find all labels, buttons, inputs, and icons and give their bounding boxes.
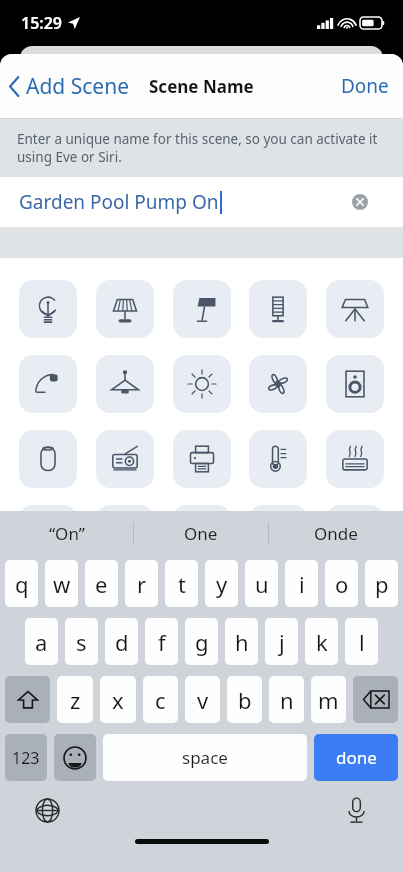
button[interactable]: Scene icon 17 [96, 505, 154, 563]
button[interactable]: t [165, 560, 198, 607]
button[interactable]: Scene icon 19 [249, 505, 307, 563]
staticText: z [70, 685, 81, 715]
button[interactable]: s [65, 618, 98, 665]
button[interactable]: x [100, 676, 136, 723]
staticText: Garden Pool Pump On [19, 189, 219, 215]
staticText: One [184, 522, 218, 545]
button[interactable]: n [269, 676, 304, 723]
staticText: e [95, 569, 108, 599]
button[interactable]: a [25, 618, 58, 665]
staticText: f [158, 627, 166, 657]
button[interactable]: p [365, 560, 398, 607]
button[interactable]: Scene icon 3 [173, 280, 231, 338]
button[interactable]: Scene icon 12 [96, 430, 154, 488]
staticText: r [137, 569, 147, 599]
button[interactable]: r [125, 560, 158, 607]
button[interactable]: Scene icon 5 [326, 280, 384, 338]
button[interactable]: “On” [0, 511, 133, 555]
button[interactable]: b [227, 676, 262, 723]
button[interactable]: u [245, 560, 278, 607]
staticText: g [195, 627, 209, 657]
staticText: b [238, 685, 252, 715]
staticText: k [316, 627, 328, 657]
button[interactable]: Dictate [339, 793, 373, 827]
staticText: m [318, 685, 339, 715]
staticText: q [15, 569, 29, 599]
button[interactable]: v [185, 676, 220, 723]
button[interactable]: done [314, 734, 398, 781]
button[interactable]: Change keyboard language [30, 793, 64, 827]
staticText: a [35, 627, 48, 657]
button[interactable]: y [205, 560, 238, 607]
button[interactable]: One [134, 511, 268, 555]
button[interactable]: k [305, 618, 338, 665]
button[interactable]: Scene icon 16 [19, 505, 77, 563]
button[interactable]: Garden Pool Pump On [0, 177, 403, 227]
staticText: x [112, 685, 124, 715]
button[interactable]: Scene icon 2 [96, 280, 154, 338]
staticText: Scene Name [149, 75, 254, 98]
staticText: y [216, 569, 228, 599]
button[interactable]: Scene icon 18 [173, 505, 231, 563]
staticText: Add Scene [26, 72, 129, 101]
staticText: done [336, 746, 377, 769]
button[interactable]: Onde [269, 511, 403, 555]
button[interactable]: Shift [5, 676, 50, 723]
button[interactable]: Scene icon 13 [173, 430, 231, 488]
button[interactable]: Scene icon 15 [326, 430, 384, 488]
button[interactable]: Done [327, 65, 403, 107]
staticText: o [335, 569, 349, 599]
staticText: Enter a unique name for this scene, so y… [17, 130, 379, 166]
button[interactable]: Scene icon 6 [19, 355, 77, 413]
staticText: space [182, 746, 228, 769]
button[interactable]: Scene icon 8 [173, 355, 231, 413]
button[interactable]: Scene icon 20 [326, 505, 384, 563]
button[interactable]: Clear text [347, 189, 373, 215]
staticText: 123 [12, 747, 40, 769]
button[interactable]: g [185, 618, 218, 665]
staticText: s [76, 627, 87, 657]
button[interactable]: h [225, 618, 258, 665]
button[interactable]: d [105, 618, 138, 665]
staticText: h [235, 627, 249, 657]
button[interactable]: Scene icon 11 [19, 430, 77, 488]
button[interactable]: i [285, 560, 318, 607]
staticText: w [53, 569, 71, 599]
button[interactable]: Emoji [54, 734, 96, 781]
staticText: t [178, 569, 186, 599]
button[interactable]: Scene icon 4 [249, 280, 307, 338]
button[interactable]: z [57, 676, 93, 723]
staticText: n [280, 685, 294, 715]
staticText: “On” [49, 522, 85, 545]
staticText: j [279, 627, 285, 657]
button[interactable]: l [345, 618, 378, 665]
staticText: v [197, 685, 209, 715]
button[interactable]: Backspace [353, 676, 398, 723]
staticText: Onde [314, 522, 358, 545]
staticText: d [115, 627, 129, 657]
button[interactable]: f [145, 618, 178, 665]
staticText: c [155, 685, 166, 715]
button[interactable]: w [45, 560, 78, 607]
button[interactable]: Scene icon 7 [96, 355, 154, 413]
button[interactable]: j [265, 618, 298, 665]
button[interactable]: c [143, 676, 178, 723]
button[interactable]: Add Scene [0, 66, 139, 107]
button[interactable]: e [85, 560, 118, 607]
button[interactable]: Scene icon 9 [249, 355, 307, 413]
staticText: u [255, 569, 269, 599]
button[interactable]: space [103, 734, 307, 781]
button[interactable]: m [311, 676, 346, 723]
button[interactable]: Scene icon 14 [249, 430, 307, 488]
staticText: l [359, 627, 365, 657]
staticText: 15:29 [21, 12, 63, 34]
button[interactable]: q [5, 560, 38, 607]
button[interactable]: o [325, 560, 358, 607]
staticText: Done [341, 73, 389, 99]
button[interactable]: 123 [5, 734, 47, 781]
staticText: i [299, 569, 305, 599]
button[interactable]: Scene icon 10 [326, 355, 384, 413]
button[interactable]: Scene icon 1 [19, 280, 77, 338]
staticText: p [375, 569, 389, 599]
